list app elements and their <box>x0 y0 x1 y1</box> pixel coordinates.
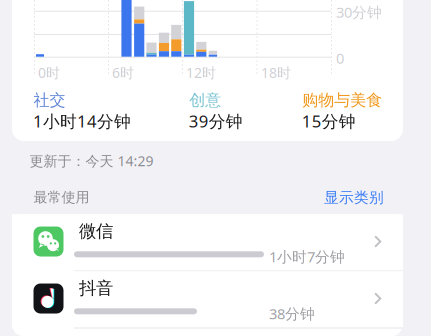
staticText: 38分钟 <box>269 303 315 323</box>
staticText: 社交 <box>33 90 65 110</box>
staticText: 购物与美食 <box>302 90 382 110</box>
staticText: 18时 <box>261 63 291 82</box>
staticText: 15分钟 <box>302 110 356 132</box>
staticText: 更新于：今天 14:29 <box>29 151 153 170</box>
staticText: 1小时14分钟 <box>33 110 131 132</box>
staticText: 0 <box>336 48 344 68</box>
staticText: 显示类别 <box>324 188 384 207</box>
staticText: 抖音 <box>79 277 113 299</box>
staticText: 12时 <box>186 63 216 82</box>
staticText: 39分钟 <box>189 110 243 132</box>
staticText: 微信 <box>79 220 113 242</box>
button[interactable]: 抖音 <box>12 271 403 328</box>
staticText: 30分钟 <box>336 2 382 22</box>
staticText: 创意 <box>189 90 221 110</box>
staticText: 最常使用 <box>33 188 89 206</box>
button[interactable]: 微信 <box>12 214 403 271</box>
staticText: 1小时7分钟 <box>269 246 345 266</box>
staticText: 0时 <box>38 63 60 82</box>
button[interactable]: 显示类别 <box>324 188 384 207</box>
staticText: 6时 <box>112 63 134 82</box>
